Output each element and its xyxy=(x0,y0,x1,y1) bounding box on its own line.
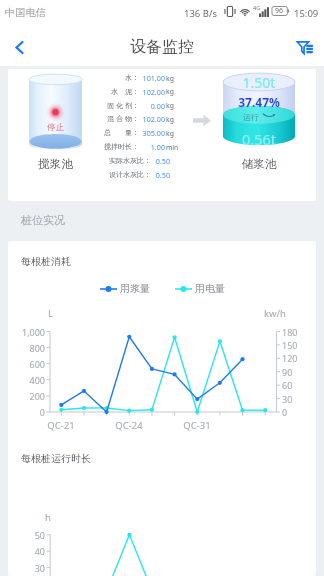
staticText: 102.00 xyxy=(139,87,165,97)
staticText: 15:09 xyxy=(294,7,319,20)
staticText: 0 xyxy=(282,406,288,418)
button[interactable]: Filter xyxy=(286,28,324,66)
staticText: QC-31 xyxy=(177,419,217,432)
staticText: 设备监控 xyxy=(130,37,194,57)
staticText: 0.50 xyxy=(139,170,170,180)
staticText: 水： xyxy=(96,73,139,82)
staticText: 200 xyxy=(0,390,45,402)
staticText: 120 xyxy=(282,352,298,364)
staticText: 1.50t xyxy=(223,73,295,92)
staticText: 固 化 剂： xyxy=(96,101,139,111)
staticText: 400 xyxy=(0,374,45,386)
staticText: 搅拌时长： xyxy=(96,142,139,151)
staticText: 60 xyxy=(282,379,293,391)
staticText: 150 xyxy=(282,339,298,351)
staticText: 0.56t xyxy=(223,129,295,149)
staticText: kg xyxy=(166,129,174,138)
staticText: h xyxy=(45,511,51,524)
staticText: 用电量 xyxy=(195,282,225,295)
staticText: 101.00 xyxy=(139,73,165,83)
staticText: 600 xyxy=(0,358,45,370)
staticText: 1,000 xyxy=(0,326,45,338)
button[interactable]: Back xyxy=(0,28,38,66)
staticText: 90 xyxy=(282,366,293,378)
staticText: kg xyxy=(166,115,174,124)
staticText: kw/h xyxy=(264,307,286,320)
staticText: QC-24 xyxy=(109,419,149,432)
staticText: L xyxy=(48,307,53,320)
staticText: 800 xyxy=(0,342,45,354)
staticText: 用浆量 xyxy=(120,282,150,295)
staticText: 30 xyxy=(0,562,45,574)
staticText: 总 量： xyxy=(96,128,139,138)
staticText: 102.00 xyxy=(139,114,165,124)
staticText: 实际水灰比： xyxy=(96,156,151,165)
staticText: 50 xyxy=(0,529,45,541)
staticText: kg xyxy=(166,74,174,83)
staticText: 37.47% xyxy=(223,94,295,110)
staticText: 储浆池 xyxy=(223,157,295,172)
staticText: 0.50 xyxy=(139,156,170,166)
staticText: 180 xyxy=(282,326,298,338)
staticText: QC-21 xyxy=(41,419,81,432)
staticText: 0 xyxy=(0,406,45,418)
staticText: 96 xyxy=(275,6,284,16)
staticText: 水 泥： xyxy=(96,87,139,97)
staticText: 搅浆池 xyxy=(29,157,82,172)
staticText: 0.00 xyxy=(139,101,165,111)
staticText: 运行 xyxy=(243,112,259,122)
staticText: min xyxy=(166,143,179,152)
staticText: 1.00 xyxy=(139,142,165,152)
staticText: kg xyxy=(166,87,174,96)
staticText: 136 B/s xyxy=(184,7,218,20)
staticText: 每根桩运行时长 xyxy=(21,452,91,465)
staticText: 桩位实况 xyxy=(21,213,65,227)
staticText: 305.00 xyxy=(139,128,165,138)
staticText: kg xyxy=(166,101,174,110)
staticText: 30 xyxy=(282,393,293,405)
staticText: 停止 xyxy=(29,122,82,133)
staticText: 混 合 物： xyxy=(96,114,139,124)
staticText: 4G xyxy=(253,4,261,11)
staticText: 设计水灰比： xyxy=(96,170,151,179)
staticText: 中国电信 xyxy=(5,6,46,19)
staticText: 每根桩消耗 xyxy=(21,255,71,268)
staticText: 40 xyxy=(0,545,45,557)
